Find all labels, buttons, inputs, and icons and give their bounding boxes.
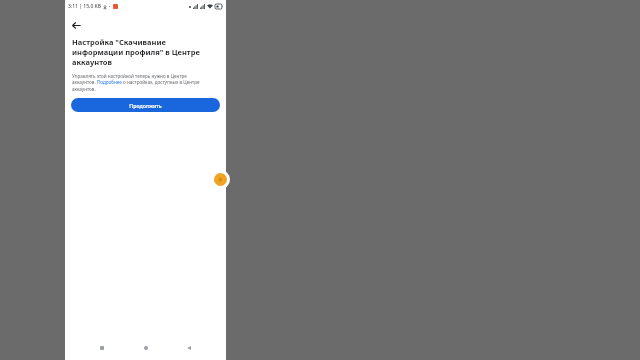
staticText: Настройка "Скачивание информации профиля… (72, 37, 216, 67)
staticText: Продолжить (129, 102, 162, 109)
button[interactable]: Продолжить (71, 98, 220, 112)
button[interactable]: Back (182, 341, 196, 355)
staticText: • (109, 4, 111, 9)
button[interactable]: Home (139, 341, 153, 355)
staticText: 3:11 | 15,0 KB (68, 3, 101, 10)
button[interactable]: Back (67, 16, 85, 34)
staticText: Управлять этой настройкой теперь нужно в… (72, 73, 208, 93)
button[interactable]: Notification badge (211, 170, 230, 189)
button[interactable]: Recent apps (95, 341, 109, 355)
